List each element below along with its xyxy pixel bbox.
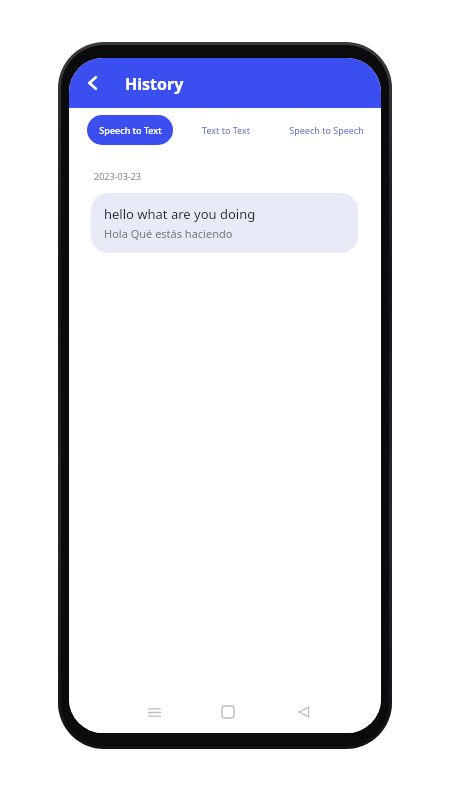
button[interactable]: hello what are you doing [91,193,358,253]
button[interactable]: Home [211,695,245,729]
button[interactable]: Text to Text [189,115,263,145]
staticText: History [125,73,184,108]
staticText: Speech to Text [99,124,162,136]
staticText: 2023-03-23 [94,170,141,182]
staticText: Text to Text [202,124,250,136]
button[interactable]: Recent apps [137,695,171,729]
staticText: hello what are you doing [104,205,256,223]
button[interactable]: Back [287,695,321,729]
button[interactable]: Speech to Speech [278,115,374,145]
staticText: Hola Qué estás haciendo [104,226,233,241]
button[interactable]: Back [77,67,109,99]
staticText: Speech to Speech [289,124,364,136]
button[interactable]: Speech to Text [87,115,173,145]
